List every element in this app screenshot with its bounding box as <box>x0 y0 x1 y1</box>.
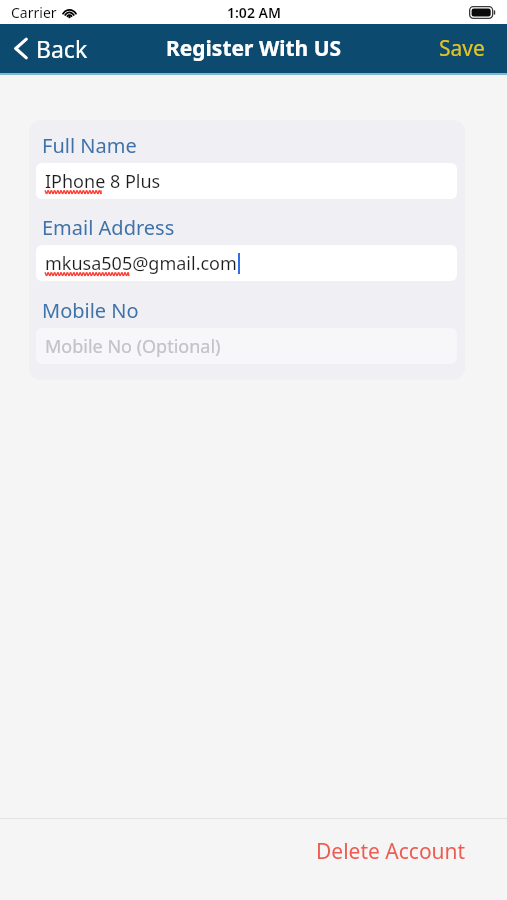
staticText: Full Name <box>42 132 137 159</box>
staticText: Carrier <box>11 3 57 22</box>
staticText: mkusa505@gmail.com <box>45 251 237 276</box>
button[interactable]: Delete Account <box>275 833 507 870</box>
staticText: Email Address <box>42 214 175 241</box>
button[interactable]: mkusa505@gmail.com <box>36 245 457 281</box>
button[interactable]: Back <box>0 27 102 70</box>
staticText: Delete Account <box>316 837 466 866</box>
staticText: Register With US <box>166 34 342 63</box>
staticText: Mobile No <box>42 297 139 324</box>
button[interactable]: Save <box>417 28 507 69</box>
staticText: Mobile No (Optional) <box>45 334 221 359</box>
staticText: Back <box>36 33 88 64</box>
staticText: 1:02 AM <box>227 3 281 22</box>
other: Back <box>14 37 28 60</box>
button[interactable]: Mobile No (Optional) <box>36 328 457 364</box>
button[interactable]: IPhone 8 Plus <box>36 163 457 199</box>
staticText: IPhone 8 Plus <box>45 169 161 194</box>
staticText: Save <box>439 34 485 63</box>
